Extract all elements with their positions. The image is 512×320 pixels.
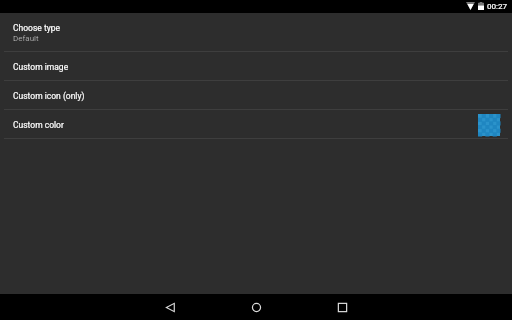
staticText: Custom color	[13, 120, 478, 130]
button[interactable]: Home	[234, 294, 278, 320]
staticText: Choose type	[13, 23, 60, 33]
staticText: Custom image	[13, 62, 500, 72]
button[interactable]: Custom icon (only)	[0, 81, 512, 110]
button[interactable]: Custom image	[0, 52, 512, 81]
button[interactable]: Back	[148, 294, 192, 320]
staticText: Default	[13, 34, 39, 43]
staticText: 00:27	[487, 1, 508, 10]
button[interactable]: Choose type	[0, 13, 512, 52]
button[interactable]: Custom color	[0, 110, 512, 139]
staticText: Custom icon (only)	[13, 91, 500, 101]
button[interactable]: Recent apps	[320, 294, 364, 320]
